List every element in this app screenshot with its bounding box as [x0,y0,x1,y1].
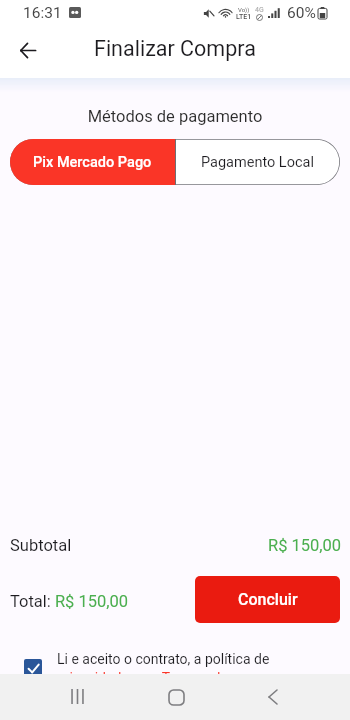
staticText: 4G [255,6,264,14]
staticText: Li e aceito o contrato, a política de pr… [57,651,314,686]
button[interactable]: Início [154,675,198,719]
button[interactable]: Aceitar termos [24,651,314,686]
staticText: LTE1 [236,13,252,21]
staticText: Finalizar Compra [94,36,256,61]
staticText: Pix Mercado Pago [33,154,152,171]
staticText: Pagamento Local [201,154,314,171]
button[interactable]: Pix Mercado Pago [10,139,175,185]
staticText: Vo)) [238,6,250,13]
staticText: Métodos de pagamento [0,107,350,126]
staticText: Total: R$ 150,00 [10,592,129,611]
button[interactable]: Pagamento Local [175,139,340,185]
button[interactable]: Voltar [251,675,295,719]
staticText: Subtotal [10,536,72,555]
staticText: Concluir [238,590,298,609]
button[interactable]: Concluir [195,576,340,623]
staticText: 16:31 [23,4,62,22]
staticText: 60% [287,4,316,22]
button[interactable]: Aceitar termos [24,659,42,677]
button[interactable]: Recentes [55,674,99,718]
button[interactable]: Voltar [10,32,46,68]
staticText: R$ 150,00 [268,536,342,555]
